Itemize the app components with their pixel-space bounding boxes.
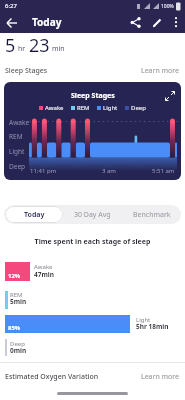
staticText: Awake	[34, 263, 53, 271]
staticText: Awake	[45, 104, 64, 112]
staticText: Deep	[9, 162, 26, 171]
staticText: 100%	[161, 3, 174, 10]
staticText: 47min	[34, 270, 54, 279]
button[interactable]	[4, 15, 20, 31]
staticText: 6:27	[5, 2, 17, 10]
button[interactable]: Today	[5, 206, 63, 223]
staticText: Deep	[131, 104, 146, 112]
staticText: 5	[5, 33, 16, 58]
button[interactable]: 12%	[5, 262, 30, 281]
staticText: 11:41 pm	[30, 167, 57, 175]
staticText: Time spent in each stage of sleep	[0, 237, 185, 247]
staticText: 5min	[10, 297, 27, 306]
staticText: Today	[32, 15, 62, 29]
button[interactable]: Learn more	[141, 66, 180, 76]
staticText: REM	[9, 132, 23, 141]
staticText: Today	[24, 210, 45, 220]
button[interactable]	[150, 15, 165, 30]
staticText: 23	[29, 33, 50, 58]
button[interactable]: Benchmark	[122, 205, 181, 224]
staticText: 3 am	[102, 167, 116, 175]
button[interactable]: 85%	[5, 315, 130, 333]
staticText: Benchmark	[133, 210, 171, 220]
staticText: Estimated Oxygen Variation	[5, 372, 99, 382]
staticText: 12%	[8, 272, 21, 280]
staticText: Light	[136, 316, 151, 324]
button[interactable]: Learn more	[141, 372, 180, 382]
staticText: Sleep Stages	[5, 66, 48, 76]
button[interactable]: 30 Day Avg	[63, 205, 122, 224]
button[interactable]	[170, 15, 182, 27]
staticText: Light	[9, 147, 25, 156]
staticText: 5:51 am	[152, 167, 175, 175]
staticText: hr	[18, 44, 26, 54]
staticText: Awake	[9, 118, 30, 127]
staticText: Deep	[10, 340, 25, 348]
staticText: Light	[103, 104, 118, 112]
staticText: 5hr 18min	[136, 322, 169, 331]
staticText: 0min	[10, 346, 27, 355]
staticText: Sleep Stages	[71, 91, 115, 101]
staticText: REM	[77, 104, 90, 112]
button[interactable]	[164, 90, 176, 102]
staticText: 85%	[8, 324, 21, 332]
staticText: min	[52, 44, 65, 54]
staticText: 30 Day Avg	[74, 210, 111, 220]
button[interactable]	[128, 15, 143, 30]
staticText: REM	[10, 291, 23, 299]
